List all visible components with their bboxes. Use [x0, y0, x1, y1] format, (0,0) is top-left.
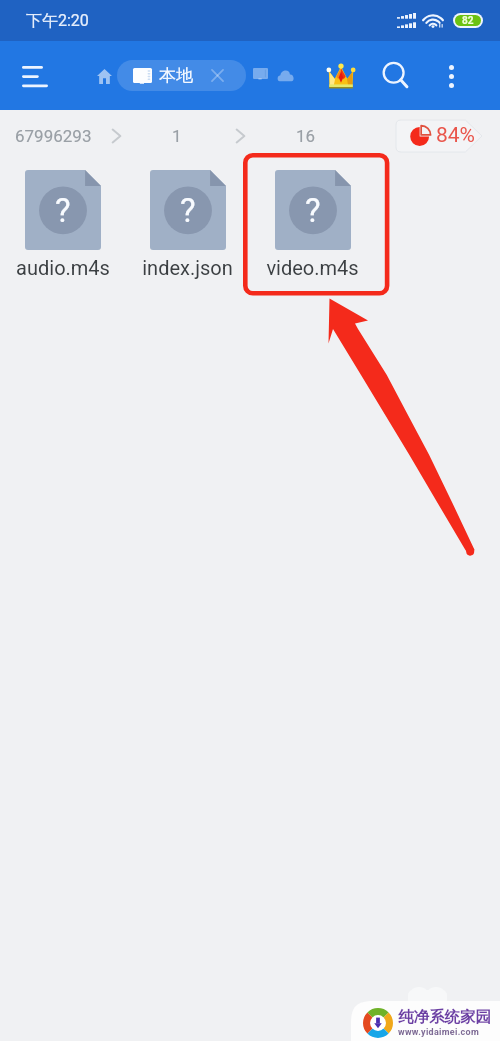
button[interactable]: 16 — [286, 116, 326, 156]
button[interactable]: VIP — [320, 55, 362, 97]
staticText: 本地 — [159, 65, 193, 86]
staticText: ? — [180, 191, 196, 230]
staticText: ? — [305, 191, 321, 230]
button[interactable]: ? — [125, 162, 250, 305]
button[interactable]: Cloud tab — [277, 68, 294, 82]
staticText: 1 — [172, 126, 182, 146]
button[interactable]: Menu — [11, 52, 59, 100]
staticText: 下午2:20 — [26, 11, 89, 31]
button[interactable]: 1 — [160, 116, 194, 156]
staticText: ? — [55, 191, 71, 230]
button[interactable]: More options — [430, 55, 472, 97]
staticText: audio.m4s — [16, 256, 110, 279]
button[interactable]: Other tab — [253, 68, 268, 79]
button[interactable]: 67996293 — [6, 116, 118, 156]
staticText: 84% — [436, 123, 475, 148]
button[interactable]: ? — [0, 162, 125, 305]
button[interactable]: ? — [250, 162, 375, 305]
staticText: 82 — [462, 15, 474, 26]
staticText: www.yidaimei.com — [398, 1027, 480, 1038]
button[interactable]: Search — [375, 55, 417, 97]
button[interactable]: Close tab — [210, 68, 225, 83]
staticText: index.json — [142, 256, 233, 279]
staticText: 16 — [296, 126, 316, 146]
button[interactable]: Home — [86, 58, 122, 94]
staticText: 67996293 — [15, 126, 92, 146]
staticText: 纯净系统家园 — [398, 1007, 491, 1027]
button[interactable]: 本地 — [117, 60, 246, 91]
button[interactable]: Storage usage 84 percent — [396, 120, 482, 152]
staticText: video.m4s — [266, 256, 359, 279]
